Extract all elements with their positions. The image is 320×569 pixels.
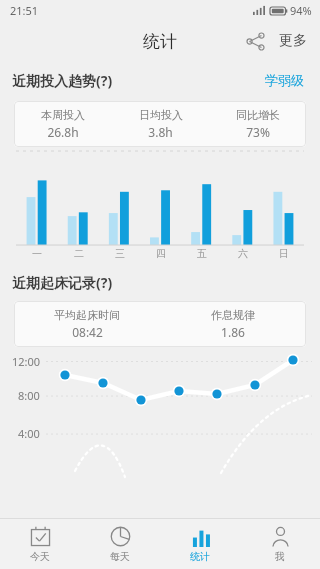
staticText: 3.8h	[148, 124, 173, 140]
staticText: 日均投入	[139, 108, 183, 122]
staticText: 本周投入	[41, 108, 85, 122]
staticText: 73%	[246, 124, 270, 140]
staticText: 学弱级	[265, 72, 304, 88]
staticText: 统计	[143, 31, 177, 52]
button[interactable]: 学弱级	[261, 68, 308, 92]
staticText: 日	[279, 247, 289, 260]
button[interactable]: Share	[239, 25, 271, 57]
staticText: 六	[238, 247, 248, 260]
staticText: 二	[74, 247, 84, 260]
staticText: 12:00	[12, 354, 41, 369]
staticText: 三	[115, 247, 125, 260]
staticText: 作息规律	[211, 308, 255, 322]
staticText: 26.8h	[47, 124, 79, 140]
button[interactable]: 本周投入	[14, 101, 306, 147]
button[interactable]: 更多	[275, 26, 311, 56]
staticText: 每天	[110, 550, 130, 563]
staticText: 同比增长	[236, 108, 280, 122]
staticText: 五	[197, 247, 207, 260]
staticText: 统计	[190, 550, 210, 563]
staticText: 8:00	[18, 388, 40, 403]
staticText: 4:00	[18, 426, 40, 441]
button[interactable]: 每天	[80, 519, 160, 569]
staticText: 94%	[290, 3, 312, 18]
staticText: 今天	[30, 550, 50, 563]
staticText: 21:51	[10, 3, 39, 18]
button[interactable]: 平均起床时间	[14, 301, 306, 347]
button[interactable]: 今天	[0, 519, 80, 569]
staticText: 更多	[279, 32, 307, 50]
staticText: 近期起床记录(?)	[12, 273, 113, 292]
staticText: 一	[32, 247, 42, 260]
staticText: 近期投入趋势(?)	[12, 71, 113, 90]
staticText: 1.86	[221, 324, 245, 340]
staticText: 平均起床时间	[54, 308, 120, 322]
staticText: 四	[156, 247, 166, 260]
button[interactable]: 统计	[160, 519, 240, 569]
staticText: 08:42	[72, 324, 103, 340]
staticText: 我	[275, 550, 285, 563]
button[interactable]: 我	[240, 519, 320, 569]
